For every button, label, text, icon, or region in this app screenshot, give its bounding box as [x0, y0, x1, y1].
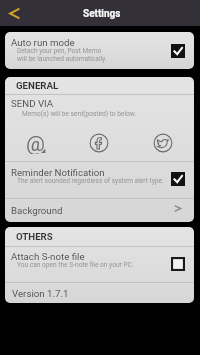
button[interactable]: Attach S-note file	[5, 247, 194, 282]
button[interactable]: Version 1.7.1	[5, 283, 194, 303]
button[interactable]: SEND VIA	[5, 95, 194, 161]
button[interactable]: Facebook	[85, 129, 112, 156]
staticText: The alert sounded regardless of system a…	[17, 177, 164, 185]
button[interactable]: Back	[1, 0, 27, 26]
staticText: Auto run mode	[11, 37, 75, 48]
staticText: Detach your pen, Post Memo will be launc…	[17, 47, 107, 63]
staticText: Reminder Notification	[11, 167, 105, 178]
button[interactable]: Reminder Notification	[5, 162, 194, 198]
staticText: Attach S-note file	[11, 251, 85, 262]
staticText: GENERAL	[16, 80, 59, 91]
staticText: @	[26, 132, 45, 154]
staticText: Memo(s) will be sent(posted) to below.	[22, 110, 137, 118]
button[interactable]: Email	[21, 129, 48, 156]
staticText: Settings	[83, 8, 121, 20]
staticText: You can open the S-note file on your PC.	[17, 261, 134, 269]
staticText: OTHERS	[16, 231, 53, 242]
button[interactable]: Background	[5, 199, 194, 222]
staticText: Version 1.7.1	[12, 288, 69, 299]
button[interactable]: Twitter	[149, 129, 176, 156]
staticText: Background	[11, 205, 63, 216]
staticText: SEND VIA	[11, 98, 54, 109]
button[interactable]: Auto run mode	[5, 32, 194, 69]
